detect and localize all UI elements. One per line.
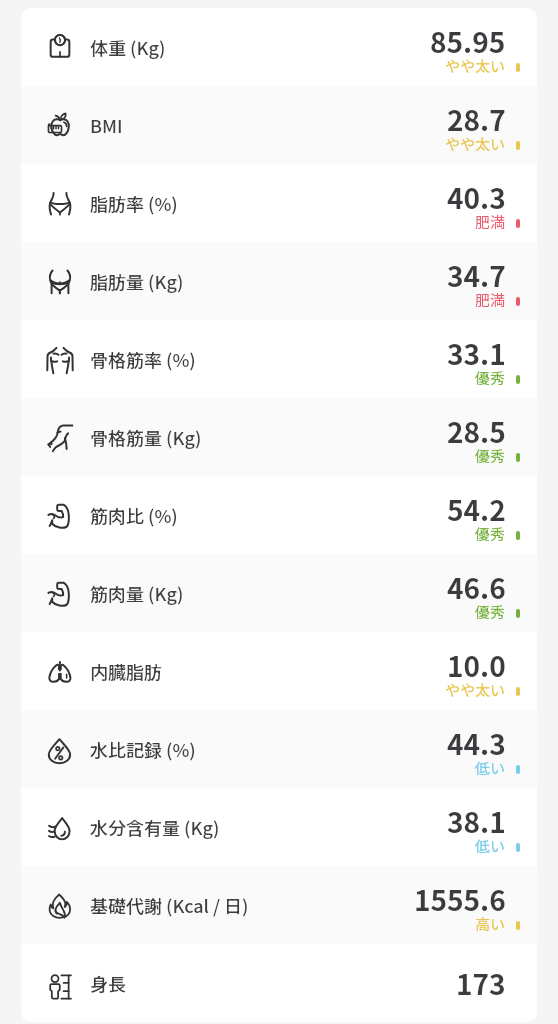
staticText: 優秀 [475, 523, 506, 545]
staticText: 54.2 [447, 489, 506, 530]
button[interactable]: 水分含有量 (Kg) [21, 788, 537, 866]
staticText: 筋肉量 (Kg) [90, 580, 184, 606]
staticText: BMI [90, 112, 123, 138]
staticText: 体重 (Kg) [90, 34, 166, 60]
staticText: 40.3 [447, 177, 506, 218]
staticText: 身長 [90, 970, 126, 996]
button[interactable]: 基礎代謝 (Kcal / 日) [21, 866, 537, 944]
button[interactable]: 骨格筋量 (Kg) [21, 398, 537, 476]
staticText: 46.6 [447, 567, 506, 608]
button[interactable]: 脂肪量 (Kg) [21, 242, 537, 320]
staticText: 85.95 [430, 21, 506, 62]
staticText: 優秀 [475, 367, 506, 389]
button[interactable]: 身長 [21, 944, 537, 1022]
button[interactable]: 水比記録 (%) [21, 710, 537, 788]
staticText: 基礎代謝 (Kcal / 日) [90, 892, 249, 918]
staticText: 28.5 [447, 411, 506, 452]
button[interactable]: 体重 (Kg) [21, 8, 537, 86]
staticText: 水分含有量 (Kg) [90, 814, 220, 840]
staticText: 水比記録 (%) [90, 736, 196, 762]
button[interactable]: 脂肪率 (%) [21, 164, 537, 242]
staticText: 高い [475, 913, 506, 935]
button[interactable]: 内臓脂肪 [21, 632, 537, 710]
button[interactable]: BMI [21, 86, 537, 164]
staticText: 肥満 [475, 211, 506, 233]
staticText: 骨格筋率 (%) [90, 346, 196, 372]
staticText: 34.7 [447, 255, 506, 296]
staticText: 優秀 [475, 601, 506, 623]
staticText: やや太い [445, 55, 506, 77]
staticText: 脂肪率 (%) [90, 190, 178, 216]
staticText: 脂肪量 (Kg) [90, 268, 184, 294]
staticText: 低い [475, 835, 506, 857]
staticText: 低い [475, 757, 506, 779]
staticText: 骨格筋量 (Kg) [90, 424, 202, 450]
staticText: 筋肉比 (%) [90, 502, 178, 528]
staticText: やや太い [445, 679, 506, 701]
staticText: 173 [456, 963, 506, 1004]
staticText: 38.1 [447, 801, 506, 842]
staticText: やや太い [445, 133, 506, 155]
staticText: 10.0 [447, 645, 506, 686]
staticText: 1555.6 [414, 879, 506, 920]
button[interactable]: 筋肉量 (Kg) [21, 554, 537, 632]
staticText: 優秀 [475, 445, 506, 467]
button[interactable]: 骨格筋率 (%) [21, 320, 537, 398]
staticText: 28.7 [447, 99, 506, 140]
button[interactable]: 筋肉比 (%) [21, 476, 537, 554]
staticText: 44.3 [447, 723, 506, 764]
staticText: 内臓脂肪 [90, 658, 162, 684]
staticText: 33.1 [447, 333, 506, 374]
staticText: 肥満 [475, 289, 506, 311]
